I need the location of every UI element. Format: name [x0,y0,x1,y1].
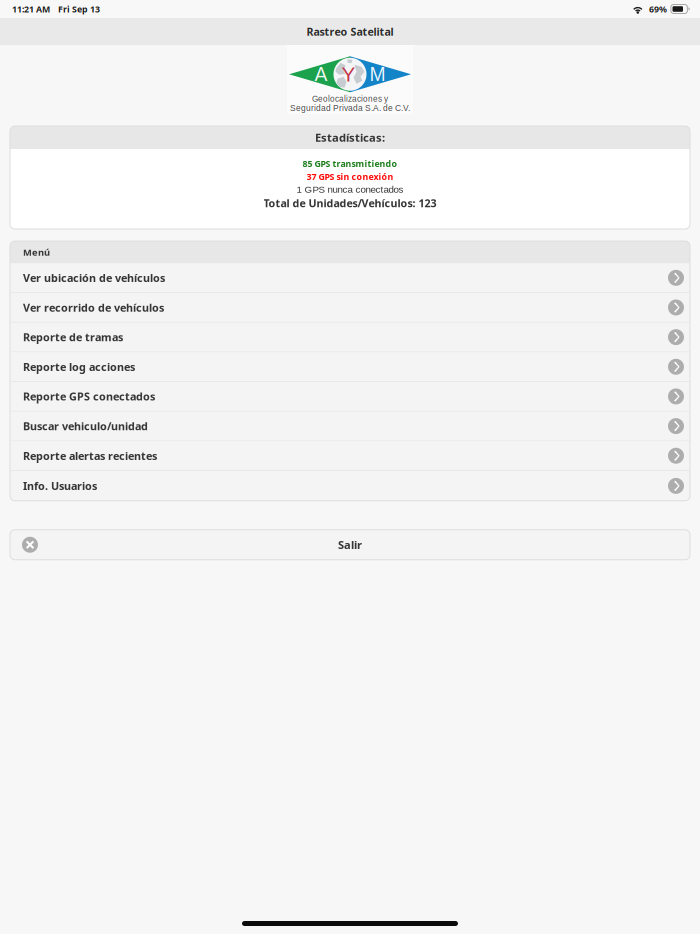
staticText: Rastreo Satelital [306,24,393,39]
button[interactable]: Reporte GPS conectados [10,382,690,412]
button[interactable]: Reporte alertas recientes [10,441,690,471]
staticText: Y [341,63,355,86]
staticText: Info. Usuarios [23,478,97,493]
button[interactable]: Ver recorrido de vehículos [10,293,690,323]
staticText: A [314,63,327,85]
staticText: Reporte alertas recientes [23,448,157,463]
staticText: Menú [23,246,50,259]
button[interactable]: Reporte log acciones [10,352,690,382]
staticText: 11:21 AM [12,3,50,15]
staticText: M [369,63,385,85]
staticText: 85 GPS transmitiendo [302,157,397,169]
staticText: Fri Sep 13 [58,3,100,15]
staticText: Reporte de tramas [23,330,123,344]
button[interactable]: Info. Usuarios [10,471,690,501]
staticText: 37 GPS sin conexión [306,170,393,182]
staticText: Reporte GPS conectados [23,389,155,404]
staticText: 69% [649,3,667,15]
staticText: Total de Unidades/Vehículos: 123 [263,196,436,210]
button[interactable]: Reporte de tramas [10,323,690,352]
staticText: 1 GPS nunca conectados [296,184,403,195]
staticText: Estadísticas: [315,130,385,145]
staticText: Geolocalizaciones y [312,94,388,103]
staticText: Ver recorrido de vehículos [23,300,164,315]
button[interactable]: Ver ubicación de vehículos [10,263,690,293]
staticText: Ver ubicación de vehículos [23,270,165,285]
button[interactable]: Buscar vehiculo/unidad [10,412,690,441]
staticText: Salir [338,537,362,552]
staticText: Seguridad Privada S.A. de C.V. [290,103,410,113]
button[interactable]: Salir [0,530,700,560]
staticText: Buscar vehiculo/unidad [23,419,148,433]
staticText: Reporte log acciones [23,359,135,374]
